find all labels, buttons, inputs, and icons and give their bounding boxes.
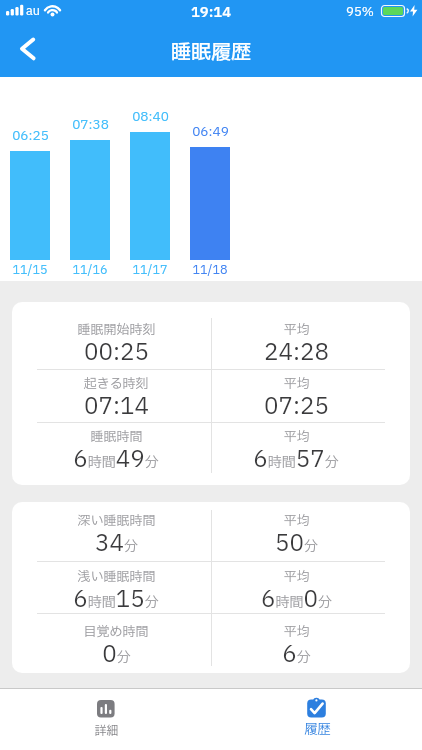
staticText: 平均 [283,320,310,338]
staticText: 07:25 [264,390,329,419]
staticText: 目覚め時間 [83,622,149,640]
staticText: 6時間0分 [261,583,332,612]
staticText: 平均 [283,427,310,445]
staticText: 睡眠時間 [90,427,143,445]
staticText: 95% [346,3,374,19]
staticText: 11/17 [132,261,168,278]
staticText: 平均 [283,622,310,640]
staticText: 起きる時刻 [83,374,149,392]
staticText: 07:14 [84,390,149,419]
staticText: 履歴 [304,720,331,738]
staticText: 詳細 [94,722,119,739]
staticText: 00:25 [84,336,149,365]
staticText: 6時間15分 [73,583,159,612]
staticText: 34分 [95,527,138,556]
button[interactable]: 詳細 [55,692,156,744]
staticText: 平均 [283,567,310,585]
staticText: 6分 [282,638,311,667]
staticText: 11/16 [72,261,108,278]
staticText: 睡眠開始時刻 [77,320,156,338]
staticText: 深い睡眠時間 [77,511,156,529]
staticText: 平均 [283,374,310,392]
button[interactable]: 履歴 [266,692,367,744]
staticText: 11/15 [12,261,48,278]
staticText: 06:25 [12,126,49,143]
staticText: 浅い睡眠時間 [77,567,156,585]
staticText: au [26,2,40,19]
staticText: 11/18 [192,261,228,278]
staticText: 06:49 [192,122,229,139]
staticText: 平均 [283,511,310,529]
staticText: 6時間57分 [253,443,339,472]
staticText: 0分 [102,638,131,667]
button[interactable] [6,30,50,68]
staticText: 睡眠履歴 [171,38,251,64]
staticText: 50分 [275,527,318,556]
staticText: 07:38 [72,115,109,132]
staticText: 08:40 [132,107,169,124]
staticText: 19:14 [191,2,231,19]
staticText: 24:28 [264,336,329,365]
staticText: 6時間49分 [73,443,159,472]
